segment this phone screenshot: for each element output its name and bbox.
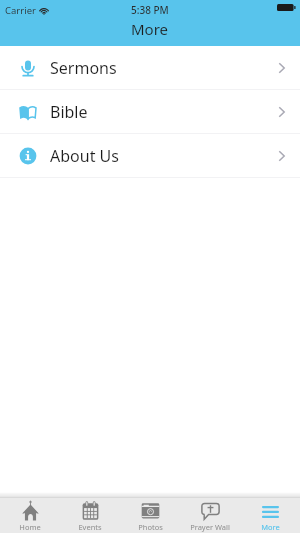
staticText: More — [261, 522, 280, 532]
staticText: Events — [78, 522, 102, 532]
button[interactable]: Home — [0, 498, 60, 533]
button[interactable]: Photos — [120, 498, 180, 533]
staticText: Prayer Wall — [190, 522, 230, 532]
button[interactable]: Sermons — [0, 46, 300, 90]
staticText: Sermons — [50, 57, 117, 79]
staticText: Home — [19, 522, 41, 532]
staticText: Carrier — [5, 4, 36, 17]
staticText: Bible — [50, 101, 88, 123]
staticText: Photos — [138, 522, 163, 532]
staticText: About Us — [50, 145, 119, 167]
button[interactable]: About Us — [0, 134, 300, 178]
staticText: More — [131, 19, 169, 39]
button[interactable]: Prayer Wall — [180, 498, 240, 533]
other: Battery full — [277, 4, 295, 11]
button[interactable]: More — [240, 498, 300, 533]
button[interactable]: Events — [60, 498, 120, 533]
other: Wi-Fi signal — [39, 6, 49, 16]
staticText: 5:38 PM — [131, 3, 169, 17]
button[interactable]: Bible — [0, 90, 300, 134]
